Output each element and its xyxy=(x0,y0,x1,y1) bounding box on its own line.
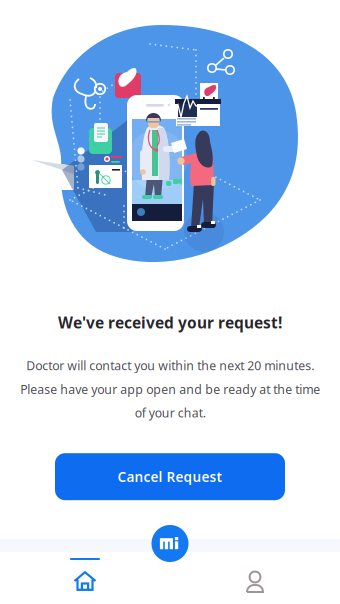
staticText: We've received your request! xyxy=(58,312,282,333)
button[interactable]: Cancel Request xyxy=(55,453,285,500)
staticText: Doctor will contact you within the next … xyxy=(20,357,320,421)
button[interactable]: Profile xyxy=(170,552,340,604)
staticText: Cancel Request xyxy=(117,467,222,486)
button[interactable]: Home xyxy=(0,552,170,604)
button[interactable]: Home xyxy=(151,525,188,562)
